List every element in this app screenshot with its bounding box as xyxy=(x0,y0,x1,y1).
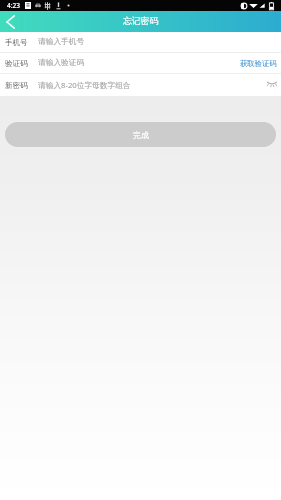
button[interactable]: Back xyxy=(0,11,21,32)
staticText: 获取验证码 xyxy=(240,59,277,68)
staticText: 忘记密码 xyxy=(123,16,159,27)
staticText: 手机号 xyxy=(5,38,28,47)
button[interactable]: 完成 xyxy=(5,122,276,147)
staticText: 新密码 xyxy=(5,81,28,90)
staticText: 验证码 xyxy=(5,59,28,68)
button[interactable]: 获取验证码 xyxy=(238,55,279,72)
staticText: 请输入8-20位字母数字组合 xyxy=(38,80,131,91)
staticText: 4:23 xyxy=(7,1,20,10)
button[interactable]: 手机号 xyxy=(0,32,281,52)
button[interactable]: 新密码 xyxy=(0,74,281,96)
button[interactable]: Show password xyxy=(264,75,280,91)
staticText: 请输入验证码 xyxy=(38,58,85,68)
button[interactable]: 验证码 xyxy=(0,53,281,73)
staticText: 完成 xyxy=(133,130,149,140)
staticText: 请输入手机号 xyxy=(38,37,85,47)
